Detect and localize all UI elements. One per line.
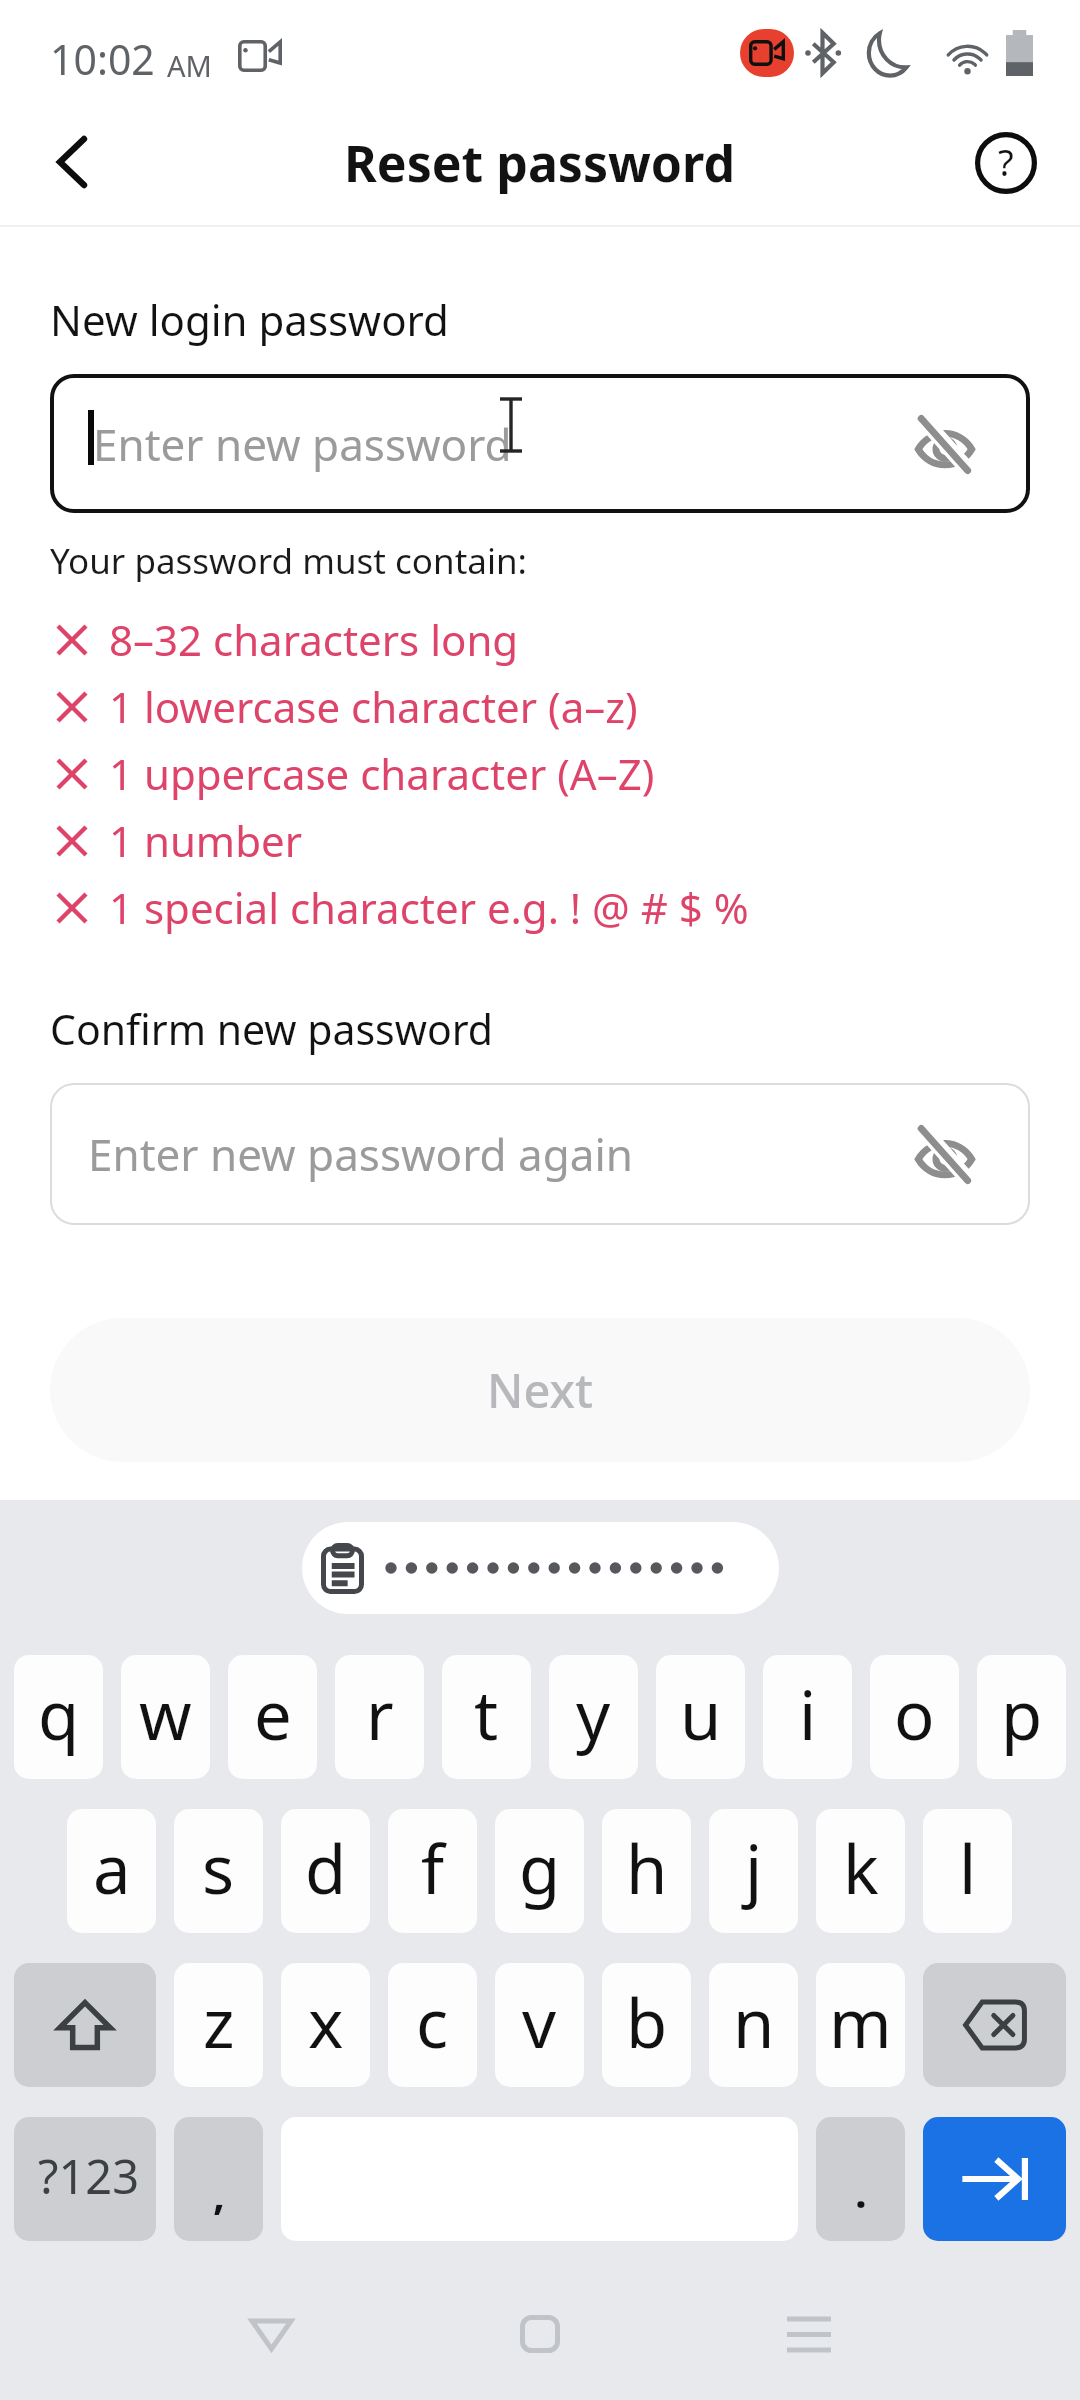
staticText: x xyxy=(308,1976,344,2067)
staticText: Your password must contain: xyxy=(50,537,527,585)
button[interactable]: i xyxy=(763,1655,852,1779)
staticText: New login password xyxy=(50,291,449,348)
staticText: w xyxy=(139,1668,192,1759)
staticText: 10:02 xyxy=(50,31,155,87)
staticText: Reset password xyxy=(344,129,736,197)
button[interactable]: n xyxy=(709,1963,798,2087)
staticText: e xyxy=(254,1668,292,1759)
button[interactable]: f xyxy=(388,1809,477,1933)
button[interactable]: Enter xyxy=(923,2117,1066,2241)
staticText: , xyxy=(213,2165,225,2222)
staticText: a xyxy=(93,1822,131,1913)
button[interactable]: q xyxy=(14,1655,103,1779)
staticText: o xyxy=(894,1668,935,1759)
button[interactable]: Next xyxy=(50,1318,1030,1462)
staticText: t xyxy=(474,1668,499,1759)
button[interactable] xyxy=(302,1522,779,1614)
button[interactable]: u xyxy=(656,1655,745,1779)
staticText: d xyxy=(305,1822,347,1913)
button[interactable]: c xyxy=(388,1963,477,2087)
staticText: j xyxy=(745,1822,763,1913)
staticText: Next xyxy=(487,1358,594,1422)
staticText: p xyxy=(1001,1668,1043,1759)
button[interactable]: Back xyxy=(137,2274,405,2394)
staticText: g xyxy=(519,1822,561,1913)
staticText: 1 lowercase character (a–z) xyxy=(109,678,638,735)
button[interactable]: o xyxy=(870,1655,959,1779)
button[interactable]: g xyxy=(495,1809,584,1933)
staticText: z xyxy=(203,1976,235,2067)
staticText: r xyxy=(366,1668,394,1759)
staticText: b xyxy=(626,1976,668,2067)
button[interactable]: Recents xyxy=(674,2274,943,2394)
staticText: i xyxy=(799,1668,817,1759)
button[interactable]: m xyxy=(816,1963,905,2087)
staticText: v xyxy=(522,1976,557,2067)
button[interactable]: k xyxy=(816,1809,905,1933)
staticText: n xyxy=(733,1976,775,2067)
button[interactable]: w xyxy=(121,1655,210,1779)
staticText: ? xyxy=(998,138,1014,187)
button[interactable]: Enter new password xyxy=(50,374,1030,513)
button[interactable]: Enter new password again xyxy=(50,1083,1030,1225)
button[interactable]: j xyxy=(709,1809,798,1933)
button[interactable]: Back xyxy=(10,103,134,220)
staticText: 1 uppercase character (A–Z) xyxy=(109,745,655,802)
button[interactable]: Backspace xyxy=(923,1963,1066,2087)
button[interactable]: t xyxy=(442,1655,531,1779)
button[interactable]: l xyxy=(923,1809,1012,1933)
staticText: k xyxy=(843,1822,879,1913)
button[interactable]: . xyxy=(816,2117,905,2241)
button[interactable]: Home xyxy=(405,2274,674,2394)
button[interactable]: , xyxy=(174,2117,263,2241)
staticText: ?123 xyxy=(38,2144,140,2208)
button[interactable]: s xyxy=(174,1809,263,1933)
button[interactable]: b xyxy=(602,1963,691,2087)
staticText: Enter new password xyxy=(93,414,512,474)
staticText: 1 number xyxy=(109,812,302,869)
button[interactable]: v xyxy=(495,1963,584,2087)
staticText: . xyxy=(855,2163,867,2220)
button[interactable]: z xyxy=(174,1963,263,2087)
button[interactable]: Show password xyxy=(908,407,982,481)
staticText: 1 special character e.g. ! @ # $ % xyxy=(109,879,749,936)
staticText: s xyxy=(202,1822,235,1913)
button[interactable]: a xyxy=(67,1809,156,1933)
staticText: u xyxy=(680,1668,722,1759)
button[interactable]: x xyxy=(281,1963,370,2087)
button[interactable]: h xyxy=(602,1809,691,1933)
staticText: l xyxy=(959,1822,977,1913)
button[interactable]: y xyxy=(549,1655,638,1779)
staticText: 8–32 characters long xyxy=(109,611,519,668)
button[interactable]: e xyxy=(228,1655,317,1779)
button[interactable]: d xyxy=(281,1809,370,1933)
staticText: c xyxy=(416,1976,449,2067)
staticText: f xyxy=(421,1822,445,1913)
button[interactable]: ?123 xyxy=(14,2117,156,2241)
staticText: AM xyxy=(167,46,212,85)
button[interactable]: r xyxy=(335,1655,424,1779)
staticText: y xyxy=(576,1668,611,1759)
button[interactable]: Help xyxy=(960,117,1052,209)
staticText: m xyxy=(829,1976,892,2067)
staticText: h xyxy=(626,1822,668,1913)
button[interactable]: Shift xyxy=(14,1963,156,2087)
staticText: q xyxy=(38,1668,80,1759)
button[interactable]: p xyxy=(977,1655,1066,1779)
staticText: Confirm new password xyxy=(50,1001,494,1057)
staticText: Enter new password again xyxy=(88,1124,633,1184)
button[interactable]: Show password xyxy=(908,1117,982,1191)
